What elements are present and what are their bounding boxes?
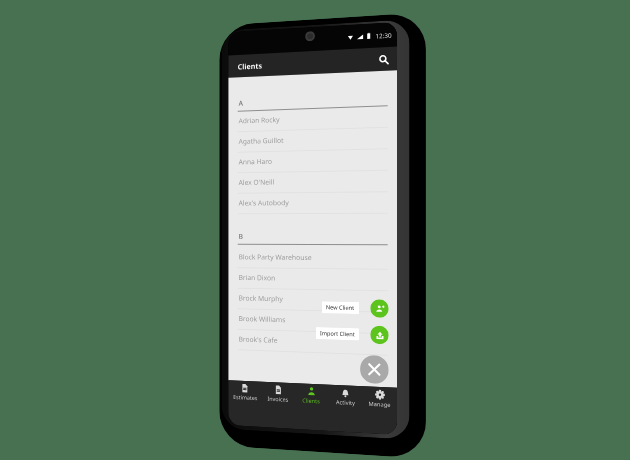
staticText: Brian Dixon (239, 273, 276, 283)
staticText: 12:30 (375, 30, 392, 40)
button[interactable]: New Client (370, 299, 389, 318)
button[interactable]: Brook Williams (228, 309, 397, 335)
staticText: Clients (238, 60, 262, 71)
staticText: A (239, 99, 243, 109)
button[interactable]: Search (376, 52, 391, 67)
button[interactable]: Adrian Rocky (228, 106, 397, 132)
button[interactable]: Brian Dixon (228, 268, 397, 291)
staticText: B (239, 232, 243, 242)
staticText: Activity (336, 398, 355, 407)
button[interactable]: Activity (328, 385, 362, 411)
button[interactable]: Block Party Warehouse (228, 247, 397, 270)
staticText: Alex's Autobody (239, 198, 289, 208)
button[interactable]: Close (360, 355, 389, 384)
button[interactable]: Brock Murphy (228, 288, 397, 313)
staticText: Block Party Warehouse (239, 252, 312, 263)
staticText: Anna Haro (239, 157, 272, 167)
staticText: Manage (368, 400, 391, 409)
button[interactable]: Manage (362, 386, 397, 412)
button[interactable]: Clients (294, 383, 328, 409)
button[interactable]: Alex's Autobody (228, 192, 397, 214)
button[interactable]: Import Client (370, 326, 389, 344)
staticText: Import Client (320, 329, 355, 338)
staticText: Invoices (267, 395, 288, 404)
button[interactable]: Agatha Guillot (228, 127, 397, 153)
staticText: Alex O'Neill (239, 178, 275, 188)
staticText: Adrian Rocky (239, 115, 280, 126)
button[interactable]: Estimates (228, 380, 261, 405)
button[interactable]: Invoices (261, 382, 294, 407)
staticText: Brook's Cafe (239, 335, 278, 346)
staticText: Clients (302, 396, 320, 405)
button[interactable]: Alex O'Neill (228, 171, 397, 194)
button[interactable]: Brook's Cafe (228, 329, 397, 356)
staticText: Estimates (233, 393, 258, 402)
button[interactable]: Anna Haro (228, 149, 397, 173)
staticText: Brook Williams (239, 314, 286, 325)
staticText: Brock Murphy (239, 294, 284, 304)
staticText: New Client (326, 303, 355, 312)
staticText: Agatha Guillot (239, 136, 284, 147)
